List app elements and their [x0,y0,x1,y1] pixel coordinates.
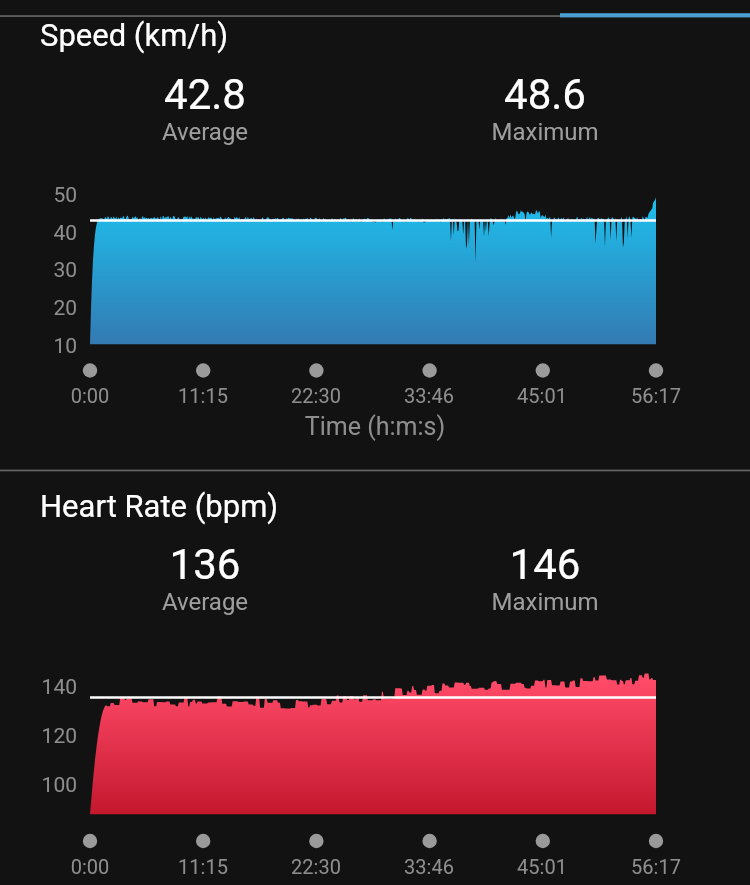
staticText: Average [85,588,325,616]
staticText: Time (h:m:s) [255,412,495,441]
staticText: 30 [0,258,77,283]
staticText: Maximum [425,588,665,616]
staticText: 11:15 [133,384,273,407]
staticText: 22:30 [246,384,386,407]
staticText: 140 [0,675,77,700]
staticText: Average [85,118,325,146]
staticText: 22:30 [246,855,386,878]
staticText: 10 [0,334,77,359]
staticText: Heart Rate (bpm) [40,488,279,524]
staticText: Speed (km/h) [40,17,229,53]
staticText: 136 [85,540,325,589]
staticText: 0:00 [20,855,160,878]
staticText: 56:17 [586,384,726,407]
staticText: 20 [0,296,77,321]
staticText: 33:46 [359,384,499,407]
button[interactable]: Heart rate chart, average 136, maximum 1… [0,470,750,885]
staticText: 146 [425,540,665,589]
staticText: 56:17 [586,855,726,878]
staticText: 120 [0,724,77,749]
staticText: 100 [0,773,77,798]
staticText: 40 [0,221,77,246]
staticText: 45:01 [472,855,612,878]
staticText: 33:46 [359,855,499,878]
staticText: Maximum [425,118,665,146]
staticText: 0:00 [20,384,160,407]
staticText: 45:01 [472,384,612,407]
button[interactable]: Speed chart, average 42.8, maximum 48.6 [0,0,750,470]
staticText: 48.6 [425,70,665,119]
staticText: 42.8 [85,70,325,119]
staticText: 50 [0,183,77,208]
staticText: 11:15 [133,855,273,878]
